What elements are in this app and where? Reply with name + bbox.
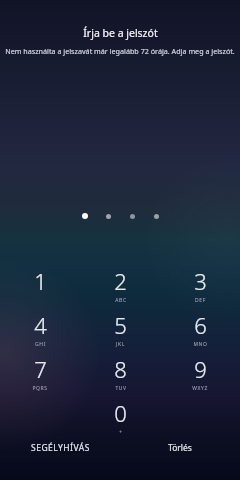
staticText: ABC — [115, 297, 127, 304]
staticText: 1 — [34, 266, 47, 296]
staticText: + — [119, 429, 123, 436]
button[interactable]: 9 — [160, 354, 240, 398]
staticText: DEF — [195, 297, 206, 304]
button[interactable]: SEGÉLYHÍVÁS — [0, 442, 120, 454]
staticText: GHI — [35, 341, 46, 348]
button[interactable]: 0 — [80, 398, 160, 438]
staticText: 9 — [194, 354, 207, 384]
staticText: 8 — [114, 354, 127, 384]
button[interactable]: 7 — [0, 354, 80, 398]
button[interactable]: 2 — [80, 266, 160, 310]
staticText: Törlés — [168, 442, 192, 454]
staticText: 0 — [114, 398, 127, 428]
button[interactable]: 8 — [80, 354, 160, 398]
button[interactable]: 1 — [0, 266, 80, 310]
staticText: 6 — [194, 310, 207, 340]
button[interactable]: 6 — [160, 310, 240, 354]
button[interactable]: 5 — [80, 310, 160, 354]
staticText: MNO — [193, 341, 208, 348]
staticText: Nem használta a jelszavát már legalább 7… — [3, 46, 237, 56]
staticText: 4 — [34, 310, 47, 340]
staticText: 3 — [194, 266, 207, 296]
button[interactable]: Törlés — [120, 442, 240, 454]
staticText: TUV — [115, 385, 127, 392]
staticText: PQRS — [32, 385, 48, 392]
staticText: Írja be a jelszót — [83, 26, 158, 40]
staticText: SEGÉLYHÍVÁS — [31, 442, 90, 454]
button[interactable]: 4 — [0, 310, 80, 354]
button[interactable]: 3 — [160, 266, 240, 310]
staticText: 5 — [114, 310, 127, 340]
staticText: 2 — [114, 266, 127, 296]
staticText: JKL — [116, 341, 125, 348]
staticText: WXYZ — [192, 385, 208, 392]
staticText: 7 — [34, 354, 47, 384]
